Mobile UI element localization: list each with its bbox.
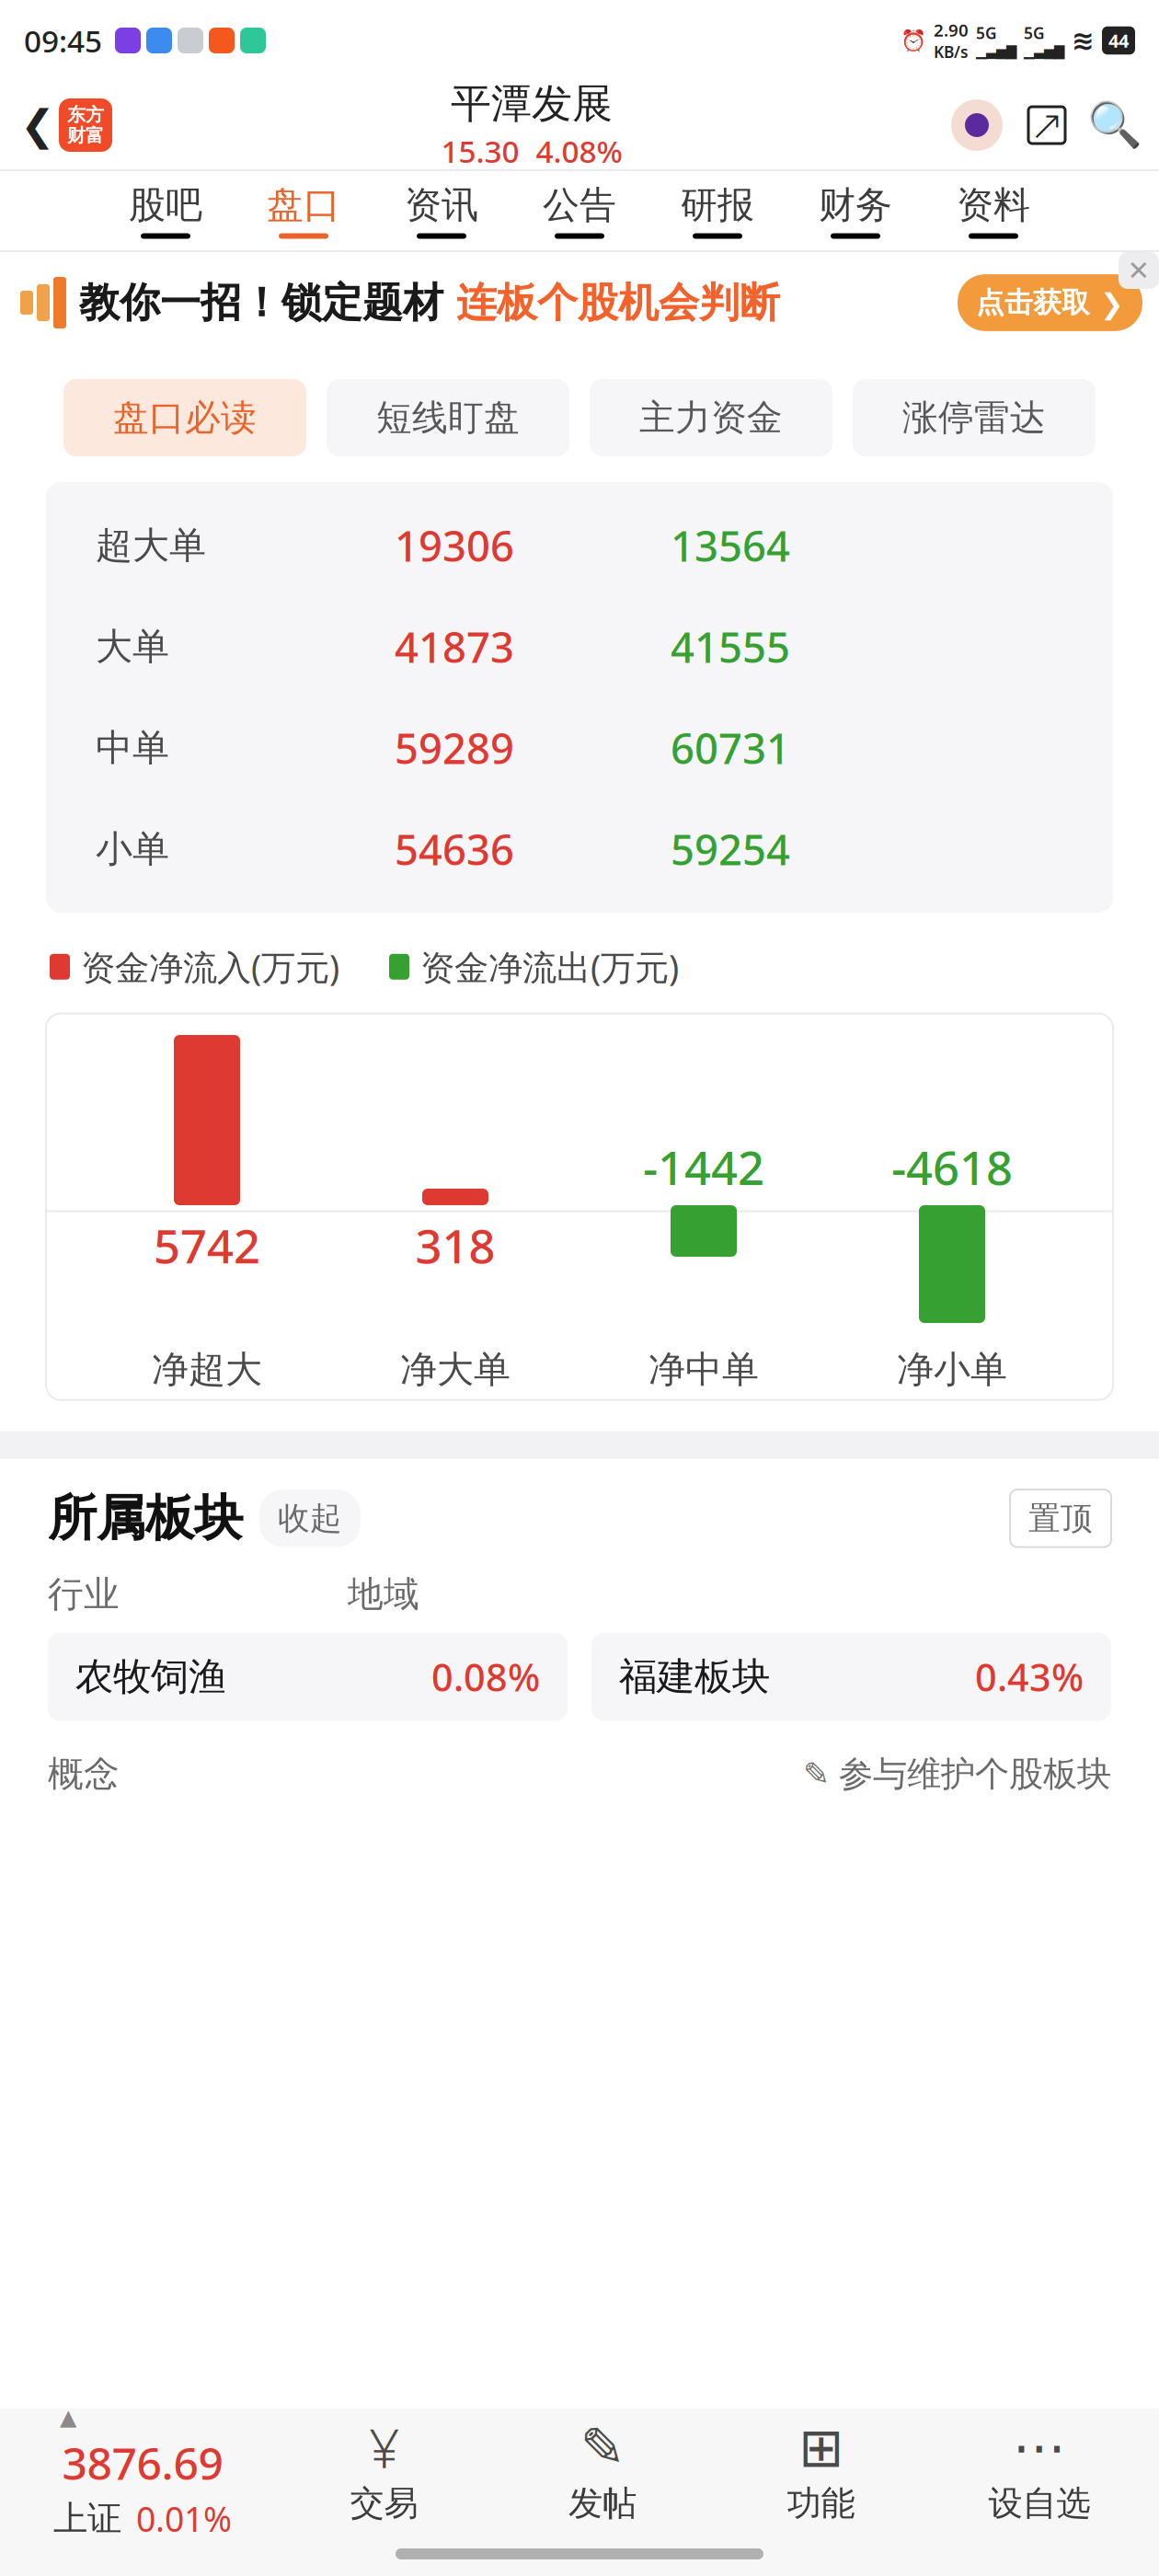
staticText: -4618 xyxy=(891,1136,1013,1198)
button[interactable]: 关闭广告 xyxy=(1119,252,1159,289)
button[interactable]: ¥ xyxy=(292,2409,476,2537)
staticText: 59254 xyxy=(671,821,790,877)
staticText: 4.08% xyxy=(536,131,622,171)
staticText: 所属板块 xyxy=(48,1488,243,1548)
staticText: 盘口必读 xyxy=(113,396,257,440)
staticText: 2.90 xyxy=(934,18,969,41)
staticText: KB/s xyxy=(934,41,969,62)
button[interactable]: 主力资金 xyxy=(590,379,832,456)
button[interactable]: ✎ xyxy=(803,1753,1111,1795)
staticText: 财富 xyxy=(67,124,104,147)
staticText: 农牧饲渔 xyxy=(75,1653,226,1700)
staticText: 净中单 xyxy=(648,1347,759,1392)
staticText: ✎ xyxy=(580,2417,625,2478)
button[interactable]: 研报 xyxy=(648,171,786,250)
button[interactable]: 资料 xyxy=(924,171,1062,250)
staticText: 财务 xyxy=(819,183,892,228)
staticText: 41555 xyxy=(671,619,790,674)
button[interactable]: 涨停雷达 xyxy=(853,379,1096,456)
staticText: 收起 xyxy=(278,1499,342,1538)
staticText: 设自选 xyxy=(988,2482,1090,2524)
button[interactable]: 搜索 xyxy=(1091,101,1139,149)
button[interactable]: 置顶 xyxy=(1010,1489,1111,1547)
staticText: 13564 xyxy=(671,518,790,573)
staticText: 0.43% xyxy=(975,1651,1084,1702)
button[interactable]: 教你一招！锁定题材 xyxy=(0,252,1159,353)
staticText: 参与维护个股板块 xyxy=(839,1753,1111,1795)
button[interactable]: 东方财富 xyxy=(59,98,112,152)
staticText: 连板个股机会判断 xyxy=(456,278,780,328)
staticText: 发帖 xyxy=(568,2482,637,2524)
staticText: 上证 xyxy=(53,2497,121,2540)
staticText: ▁▃▅▇ xyxy=(1024,43,1064,59)
staticText: -1442 xyxy=(643,1136,764,1198)
staticText: 15.30 xyxy=(441,131,519,171)
staticText: ▲ xyxy=(60,2405,76,2430)
staticText: 行业 xyxy=(48,1572,120,1616)
staticText: 概念 xyxy=(48,1752,120,1796)
staticText: 教你一招！锁定题材 xyxy=(79,278,443,328)
staticText: ✕ xyxy=(1127,255,1150,286)
staticText: ⋯ xyxy=(1012,2417,1067,2478)
button[interactable]: 短线盯盘 xyxy=(327,379,569,456)
staticText: ✎ xyxy=(803,1756,830,1792)
staticText: 41873 xyxy=(395,619,514,674)
staticText: 09:45 xyxy=(24,20,102,61)
staticText: 5742 xyxy=(154,1214,260,1276)
button[interactable]: 返回 xyxy=(17,98,59,153)
staticText: 东方 xyxy=(67,103,104,126)
staticText: 资讯 xyxy=(405,183,478,228)
button[interactable]: 农牧饲渔 xyxy=(48,1633,568,1721)
staticText: 小单 xyxy=(96,827,169,872)
staticText: 点击获取 ❯ xyxy=(976,285,1124,320)
staticText: 大单 xyxy=(96,624,169,669)
button[interactable]: ✎ xyxy=(511,2409,694,2537)
staticText: 54636 xyxy=(395,821,514,877)
button[interactable]: 收起 xyxy=(259,1489,361,1547)
staticText: ⏰ xyxy=(901,29,926,52)
staticText: 平潭发展 xyxy=(451,79,613,129)
staticText: 资料 xyxy=(957,183,1030,228)
button[interactable]: ⊞ xyxy=(729,2409,913,2537)
button[interactable]: 公告 xyxy=(511,171,648,250)
staticText: ▁▃▅▇ xyxy=(976,43,1016,59)
button[interactable]: 客服 xyxy=(951,99,1003,151)
staticText: ¥ xyxy=(369,2411,399,2483)
staticText: ⊞ xyxy=(798,2417,843,2478)
button[interactable]: 盘口 xyxy=(235,171,373,250)
button[interactable]: 分享 xyxy=(1023,101,1071,149)
staticText: 股吧 xyxy=(129,183,202,228)
staticText: 资金净流入(万元) xyxy=(81,944,339,990)
staticText: 59289 xyxy=(395,720,514,776)
staticText: 净小单 xyxy=(897,1347,1007,1392)
staticText: 5G xyxy=(976,22,997,43)
button[interactable]: 财务 xyxy=(786,171,924,250)
staticText: 置顶 xyxy=(1028,1499,1093,1538)
staticText: ❮ xyxy=(20,101,55,149)
button[interactable]: ⋯ xyxy=(947,2409,1131,2537)
staticText: 60731 xyxy=(671,720,790,776)
staticText: 0.08% xyxy=(431,1651,540,1702)
staticText: 涨停雷达 xyxy=(902,396,1046,440)
staticText: 资金净流出(万元) xyxy=(420,944,679,990)
staticText: 超大单 xyxy=(96,523,206,568)
button[interactable]: 上证指数 xyxy=(28,2409,258,2537)
staticText: 主力资金 xyxy=(639,396,783,440)
staticText: ↗ xyxy=(1029,101,1064,149)
staticText: 功能 xyxy=(787,2482,855,2524)
staticText: 3876.69 xyxy=(62,2433,223,2492)
staticText: ≋ xyxy=(1072,25,1095,56)
staticText: 短线盯盘 xyxy=(376,396,520,440)
button[interactable]: 股吧 xyxy=(97,171,235,250)
staticText: 交易 xyxy=(350,2482,418,2524)
staticText: 公告 xyxy=(543,183,616,228)
button[interactable]: 盘口必读 xyxy=(63,379,306,456)
staticText: 研报 xyxy=(681,183,754,228)
staticText: 地域 xyxy=(348,1572,419,1616)
staticText: 福建板块 xyxy=(619,1653,770,1700)
staticText: 净大单 xyxy=(400,1347,511,1392)
staticText: 盘口 xyxy=(267,183,340,228)
staticText: 44 xyxy=(1108,28,1129,53)
button[interactable]: 福建板块 xyxy=(591,1633,1111,1721)
button[interactable]: 资讯 xyxy=(373,171,511,250)
